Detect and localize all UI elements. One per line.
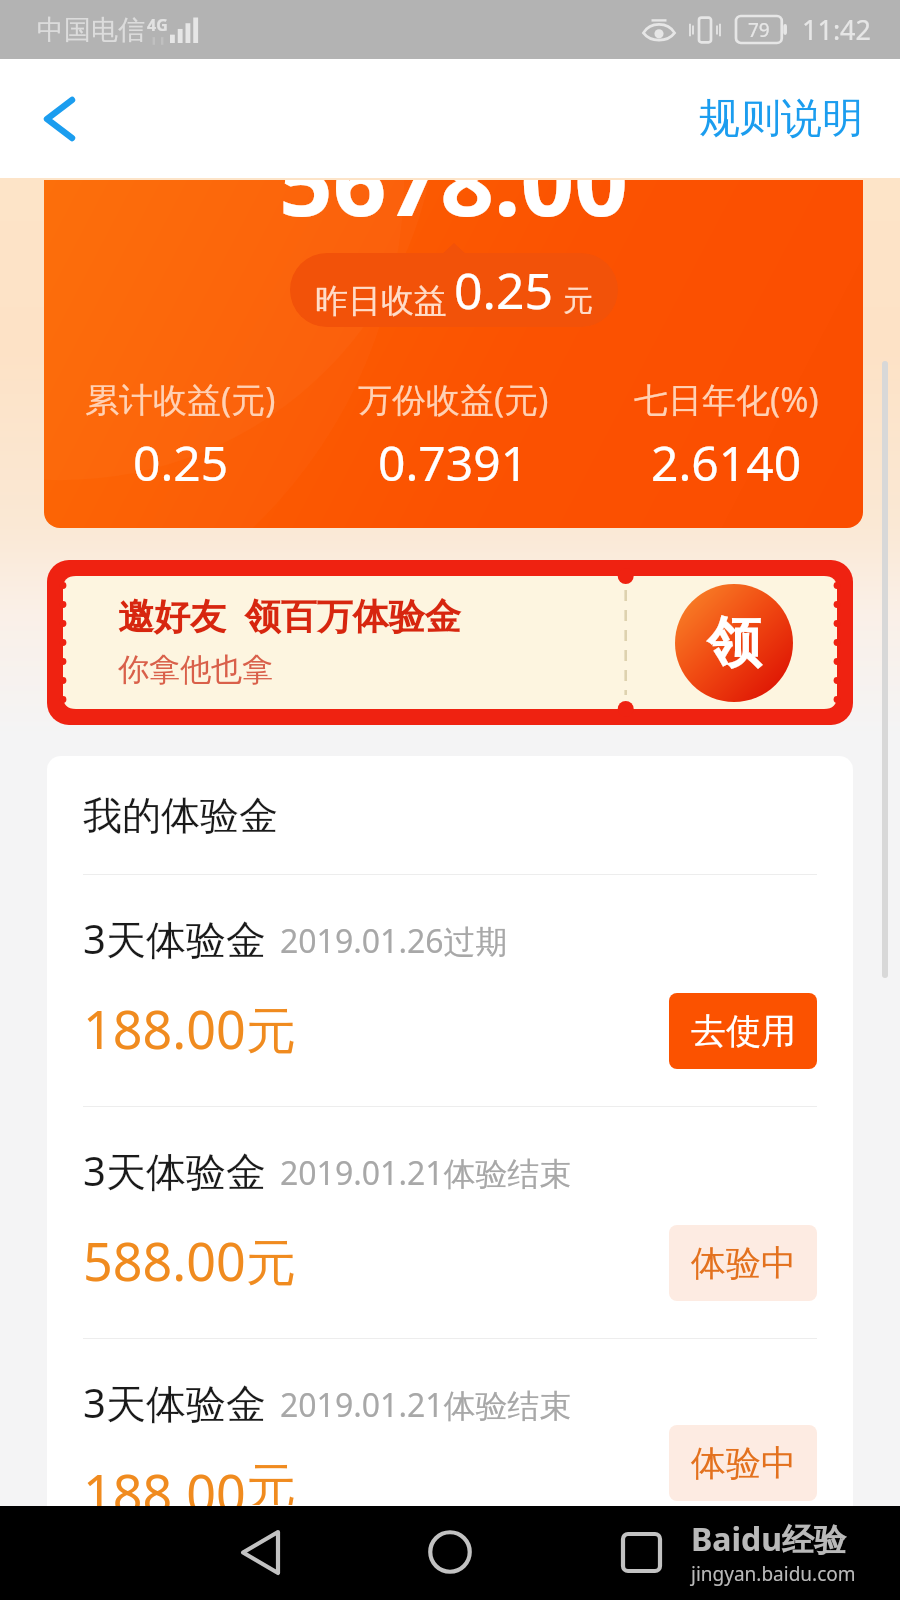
button[interactable]: 3天体验金 bbox=[47, 1107, 853, 1338]
staticText: 体验中 bbox=[691, 1241, 796, 1285]
staticText: 领 bbox=[707, 609, 761, 677]
button[interactable]: 最近任务 bbox=[606, 1517, 676, 1587]
staticText: 2019.01.21体验结束 bbox=[280, 1151, 572, 1195]
staticText: 0.7391 bbox=[378, 430, 529, 495]
button[interactable]: 3天体验金 bbox=[47, 1339, 853, 1506]
staticText: 邀好友 领百万体验金 bbox=[118, 591, 461, 640]
staticText: Baidu经验 bbox=[691, 1517, 847, 1561]
staticText: 588.00 bbox=[83, 1225, 246, 1296]
staticText: 2.6140 bbox=[651, 430, 802, 495]
button[interactable]: 领 bbox=[675, 584, 793, 702]
staticText: 元 bbox=[246, 1232, 296, 1295]
staticText: 3天体验金 bbox=[83, 1375, 266, 1430]
staticText: 元 bbox=[246, 1456, 296, 1505]
staticText: 2019.01.21体验结束 bbox=[280, 1383, 572, 1427]
staticText: 七日年化(%) bbox=[634, 376, 819, 422]
staticText: 4G bbox=[147, 14, 168, 36]
staticText: 我的体验金 bbox=[83, 791, 278, 840]
staticText: 79 bbox=[748, 17, 770, 43]
button[interactable]: 返回 bbox=[23, 83, 95, 155]
staticText: 11:42 bbox=[802, 11, 872, 48]
staticText: jingyan.baidu.com bbox=[691, 1561, 856, 1587]
staticText: 0.25 bbox=[133, 430, 229, 495]
staticText: 规则说明 bbox=[699, 93, 863, 145]
button[interactable]: 规则说明 bbox=[691, 85, 871, 153]
staticText: 元 bbox=[246, 1000, 296, 1063]
button[interactable]: 去使用 bbox=[669, 993, 817, 1069]
staticText: 5678.00 bbox=[279, 180, 629, 244]
button[interactable]: 3天体验金 bbox=[47, 875, 853, 1106]
staticText: 188.00 bbox=[83, 1457, 246, 1506]
staticText: 体验中 bbox=[691, 1441, 796, 1485]
staticText: 2019.01.26过期 bbox=[280, 919, 508, 963]
button[interactable]: 体验中 bbox=[669, 1425, 817, 1501]
staticText: 中国电信 bbox=[37, 13, 145, 47]
button[interactable]: 体验中 bbox=[669, 1225, 817, 1301]
staticText: 3天体验金 bbox=[83, 1143, 266, 1198]
staticText: 昨日收益 bbox=[315, 280, 447, 322]
staticText: 元 bbox=[563, 282, 593, 320]
staticText: 累计收益(元) bbox=[85, 376, 276, 422]
staticText: 你拿他也拿 bbox=[118, 650, 273, 689]
staticText: 3天体验金 bbox=[83, 911, 266, 966]
staticText: 188.00 bbox=[83, 993, 246, 1064]
button[interactable]: 邀好友 领百万体验金 bbox=[47, 560, 853, 725]
button[interactable]: 返回 bbox=[225, 1517, 295, 1587]
staticText: 0.25 bbox=[454, 256, 554, 324]
button[interactable]: 主页 bbox=[415, 1517, 485, 1587]
staticText: 去使用 bbox=[691, 1009, 796, 1053]
staticText: 万份收益(元) bbox=[358, 376, 549, 422]
